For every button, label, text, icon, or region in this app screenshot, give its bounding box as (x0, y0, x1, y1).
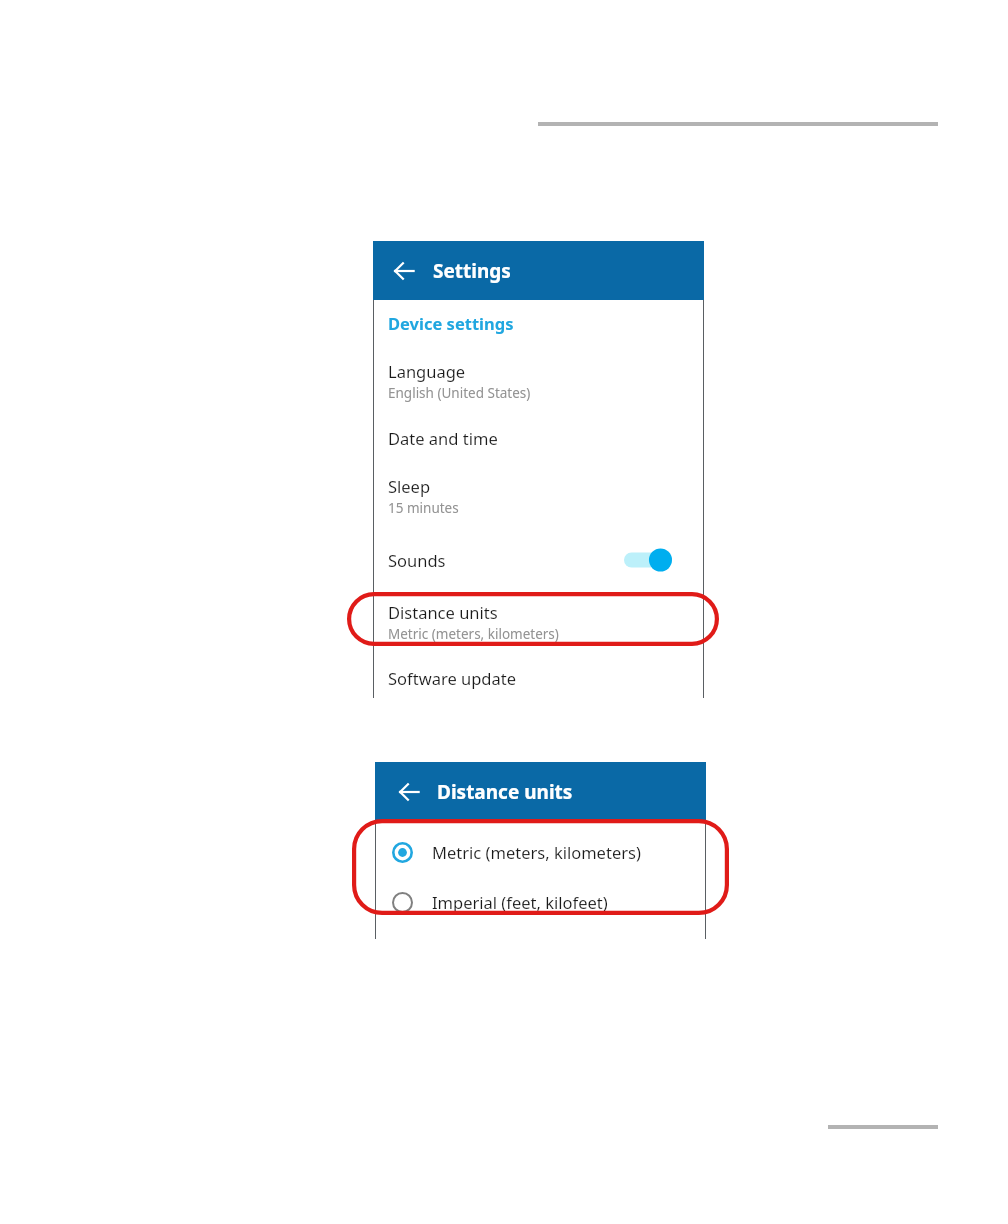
staticText: English (United States) (388, 384, 531, 402)
staticText: Sounds (388, 549, 446, 571)
button[interactable]: Distance units (373, 601, 704, 643)
staticText: Distance units (437, 779, 573, 805)
staticText: Device settings (388, 312, 514, 334)
button[interactable]: Metric (meters, kilometers) (375, 827, 706, 877)
staticText: Imperial (feet, kilofeet) (432, 891, 608, 913)
button[interactable]: Back (392, 775, 426, 809)
button[interactable]: Sounds toggle (624, 548, 672, 572)
button[interactable]: Sleep (373, 475, 704, 517)
staticText: Software update (388, 667, 516, 689)
staticText: Sleep (388, 475, 431, 497)
staticText: 15 minutes (388, 499, 459, 517)
button[interactable]: Imperial (feet, kilofeet) (375, 877, 706, 927)
staticText: Metric (meters, kilometers) (432, 841, 641, 863)
staticText: Settings (433, 258, 511, 284)
staticText: Date and time (388, 427, 498, 449)
button[interactable]: Language (373, 360, 704, 402)
staticText: Metric (meters, kilometers) (388, 625, 559, 643)
button[interactable]: Device settings (373, 312, 704, 334)
button[interactable]: Sounds (373, 545, 704, 575)
button[interactable]: Date and time (373, 427, 704, 449)
button[interactable]: Software update (373, 667, 704, 689)
staticText: Distance units (388, 601, 498, 623)
staticText: Language (388, 360, 466, 382)
button[interactable]: Back (387, 254, 421, 288)
